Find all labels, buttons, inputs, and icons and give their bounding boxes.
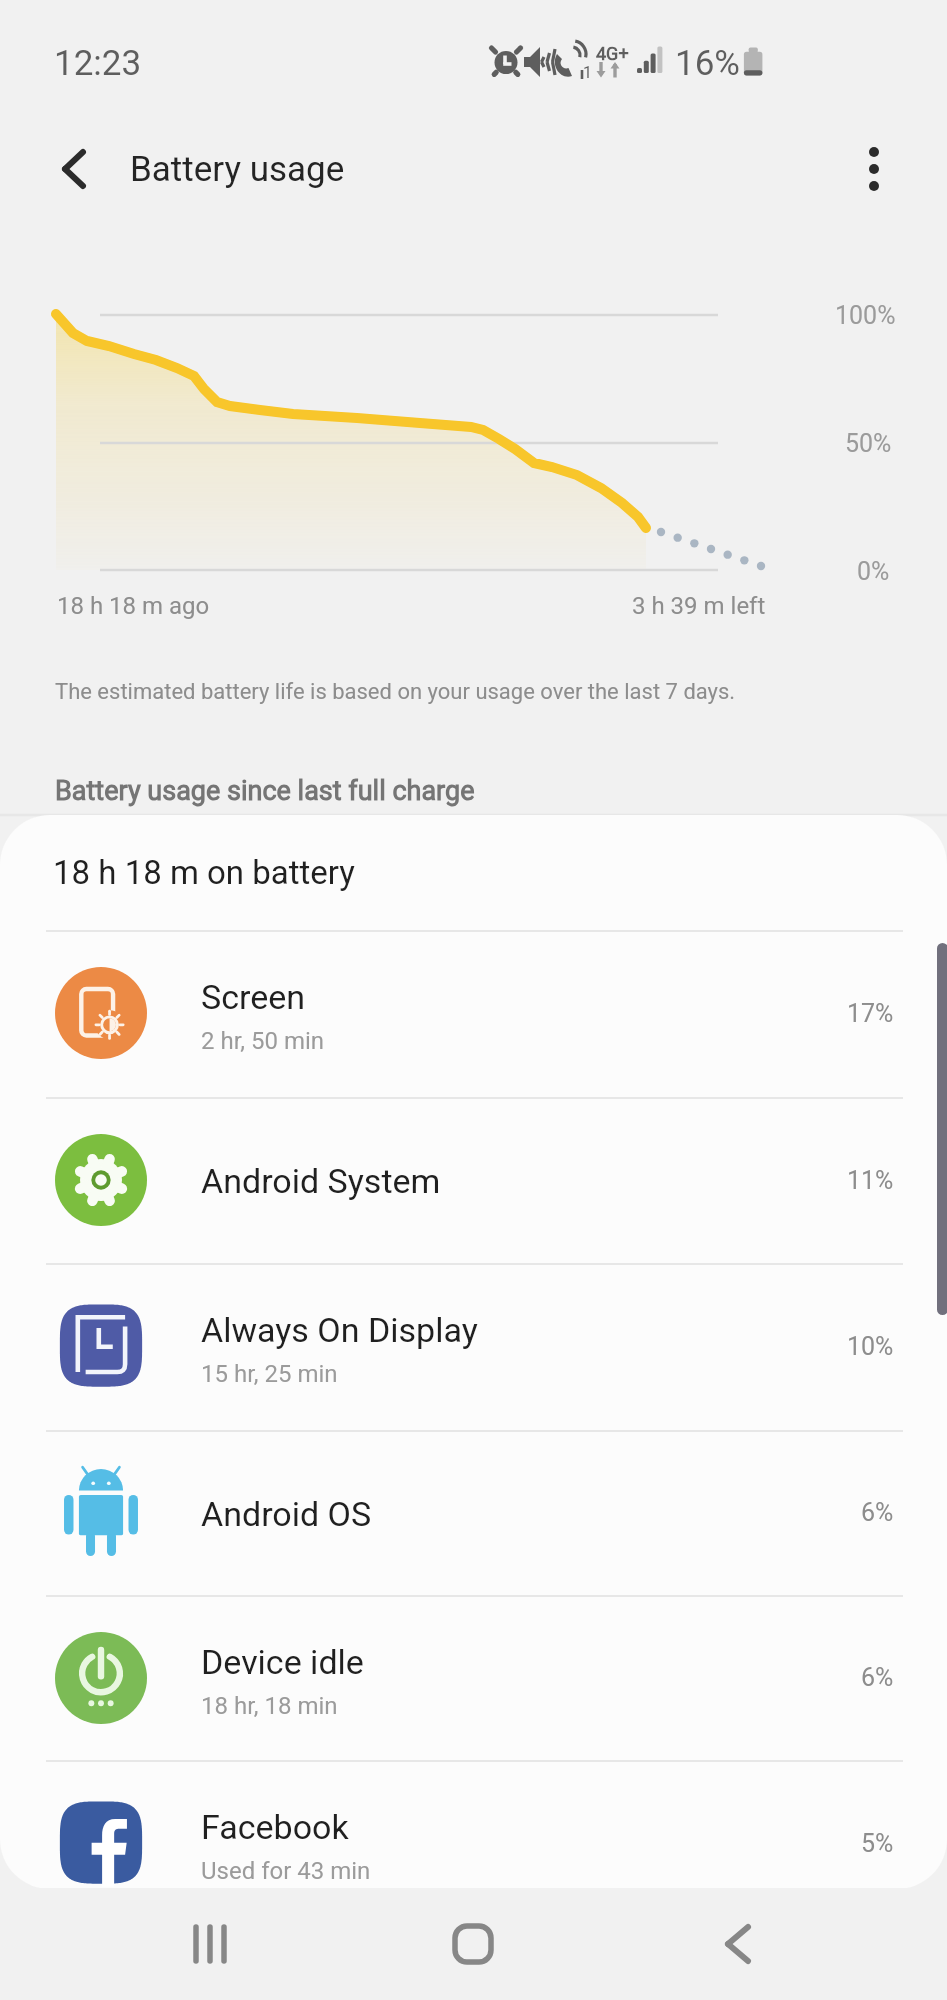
staticText: 6% (861, 1498, 894, 1527)
staticText: 18 h 18 m ago (57, 592, 210, 620)
staticText: Battery usage (130, 149, 345, 190)
button[interactable]: Facebook (0, 1760, 947, 1889)
staticText: Used for 43 min (201, 1857, 371, 1885)
button[interactable]: Navigate up (38, 133, 110, 205)
button[interactable]: Android System (0, 1097, 947, 1263)
staticText: Facebook (201, 1807, 349, 1847)
staticText: 17% (847, 999, 894, 1028)
button[interactable]: More options (838, 133, 910, 205)
button[interactable]: Android OS (0, 1430, 947, 1595)
staticText: 18 h 18 m on battery (53, 853, 355, 892)
button[interactable]: Home (438, 1909, 508, 1979)
staticText: 6% (861, 1663, 894, 1692)
staticText: Android System (201, 1161, 441, 1201)
button[interactable]: Always On Display (0, 1263, 947, 1430)
staticText: 3 h 39 m left (632, 592, 766, 620)
button[interactable]: Device idle (0, 1595, 947, 1760)
staticText: 12:23 (54, 43, 142, 84)
button[interactable]: Screen (0, 930, 947, 1097)
staticText: 16% (675, 43, 740, 84)
staticText: 15 hr, 25 min (201, 1360, 338, 1388)
staticText: 1 (583, 63, 592, 82)
staticText: Screen (201, 977, 306, 1017)
staticText: 18 hr, 18 min (201, 1692, 338, 1720)
staticText: 4G+ (596, 43, 629, 64)
staticText: 0% (857, 557, 890, 586)
staticText: The estimated battery life is based on y… (55, 679, 736, 705)
staticText: Battery usage since last full charge (55, 775, 475, 807)
staticText: 10% (847, 1332, 894, 1361)
staticText: 5% (861, 1829, 894, 1858)
staticText: 100% (835, 301, 896, 330)
staticText: 11% (847, 1166, 894, 1195)
staticText: Always On Display (201, 1310, 478, 1350)
staticText: 50% (845, 429, 892, 458)
staticText: Device idle (201, 1642, 364, 1682)
staticText: 2 hr, 50 min (201, 1027, 325, 1055)
staticText: Android OS (201, 1494, 372, 1534)
button[interactable]: Recent apps (175, 1909, 245, 1979)
button[interactable]: Back (703, 1909, 773, 1979)
